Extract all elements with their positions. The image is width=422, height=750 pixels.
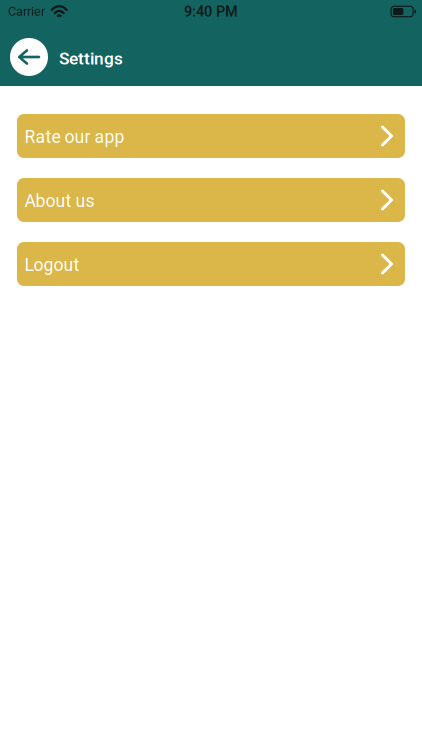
staticText: Logout [24, 255, 79, 275]
button[interactable]: Logout [17, 242, 405, 286]
staticText: Rate our app [24, 127, 124, 147]
staticText: About us [24, 191, 94, 211]
button[interactable]: Back [10, 38, 48, 76]
staticText: 9:40 PM [184, 3, 238, 20]
staticText: Settings [59, 48, 123, 69]
staticText: Carrier [8, 4, 45, 19]
button[interactable]: About us [17, 178, 405, 222]
button[interactable]: Rate our app [17, 114, 405, 158]
